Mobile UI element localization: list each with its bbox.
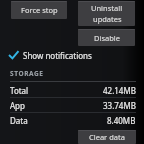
button[interactable]: Force stop: [11, 1, 67, 19]
button[interactable]: Disable: [78, 29, 135, 46]
staticText: 8.40MB: [107, 115, 136, 126]
staticText: App: [10, 100, 25, 111]
button[interactable]: App: [0, 98, 144, 112]
staticText: Total: [10, 85, 29, 96]
button[interactable]: Clear data: [78, 130, 136, 144]
staticText: Disable: [94, 33, 120, 43]
staticText: 33.74MB: [103, 100, 136, 111]
staticText: Uninstall: [91, 3, 123, 13]
staticText: updates: [93, 14, 122, 24]
staticText: Show notifications: [23, 50, 92, 61]
button[interactable]: Data: [0, 113, 144, 127]
button[interactable]: Show notifications: [0, 48, 144, 62]
button[interactable]: Total: [0, 83, 144, 97]
staticText: Clear data: [89, 132, 125, 142]
staticText: STORAGE: [10, 69, 44, 78]
staticText: 42.14MB: [103, 85, 136, 96]
staticText: Force stop: [21, 5, 58, 15]
button[interactable]: Uninstall: [78, 1, 135, 26]
staticText: Data: [10, 115, 28, 126]
